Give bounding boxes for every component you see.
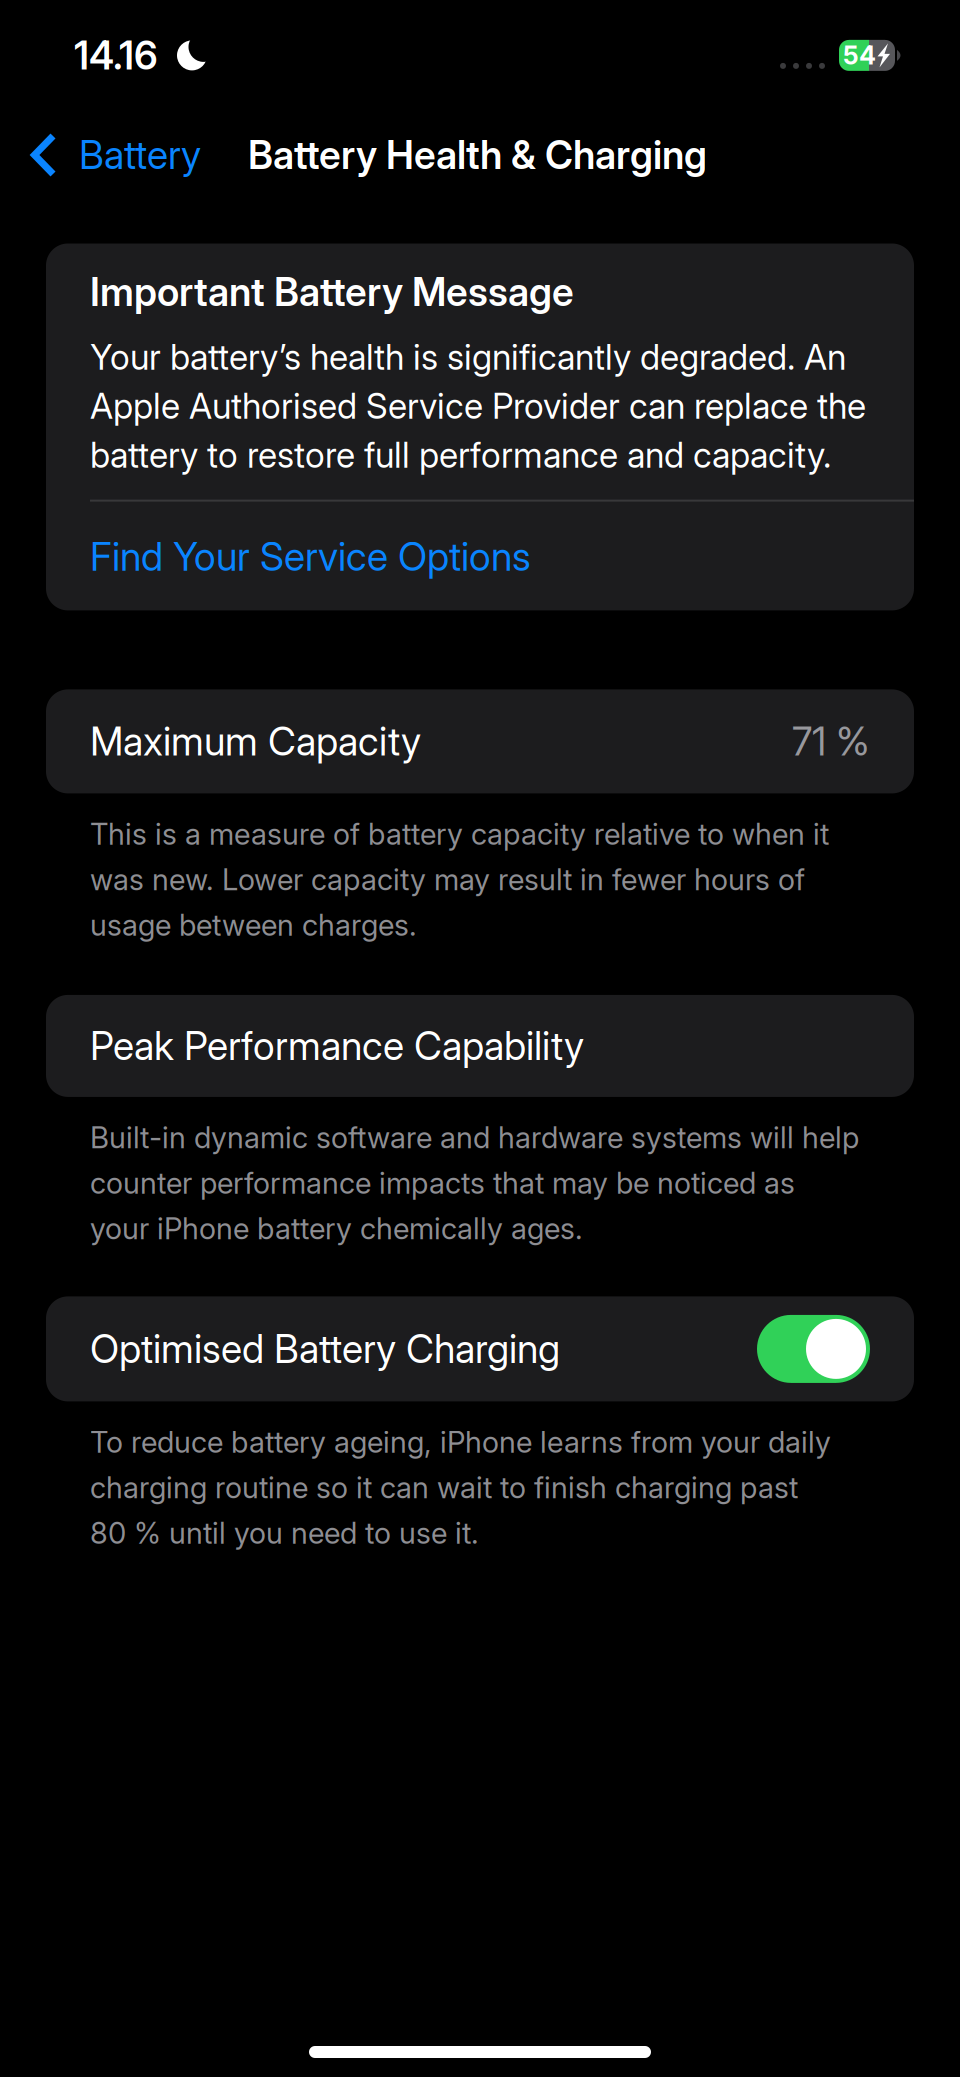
staticText: Your battery’s health is significantly d… [90,336,866,476]
staticText: Built-in dynamic software and hardware s… [90,1120,859,1246]
staticText: To reduce battery ageing, iPhone learns … [90,1424,831,1551]
staticText: Find Your Service Options [90,533,531,580]
staticText: This is a measure of battery capacity re… [90,816,829,943]
button[interactable]: Optimised Battery Charging [757,1315,870,1383]
staticText: Battery Health & Charging [248,132,707,178]
staticText: Peak Performance Capability [90,1022,584,1069]
staticText: 71 % [792,718,870,765]
staticText: 14.16 [74,32,158,79]
staticText: Optimised Battery Charging [90,1325,560,1372]
button[interactable]: Find Your Service Options [90,502,914,610]
button[interactable]: Peak Performance Capability [46,995,914,1097]
button[interactable]: Battery [0,115,215,195]
staticText: Maximum Capacity [90,718,421,765]
staticText: Battery [79,132,201,178]
staticText: Important Battery Message [90,268,574,315]
staticText: 54 [843,40,876,71]
